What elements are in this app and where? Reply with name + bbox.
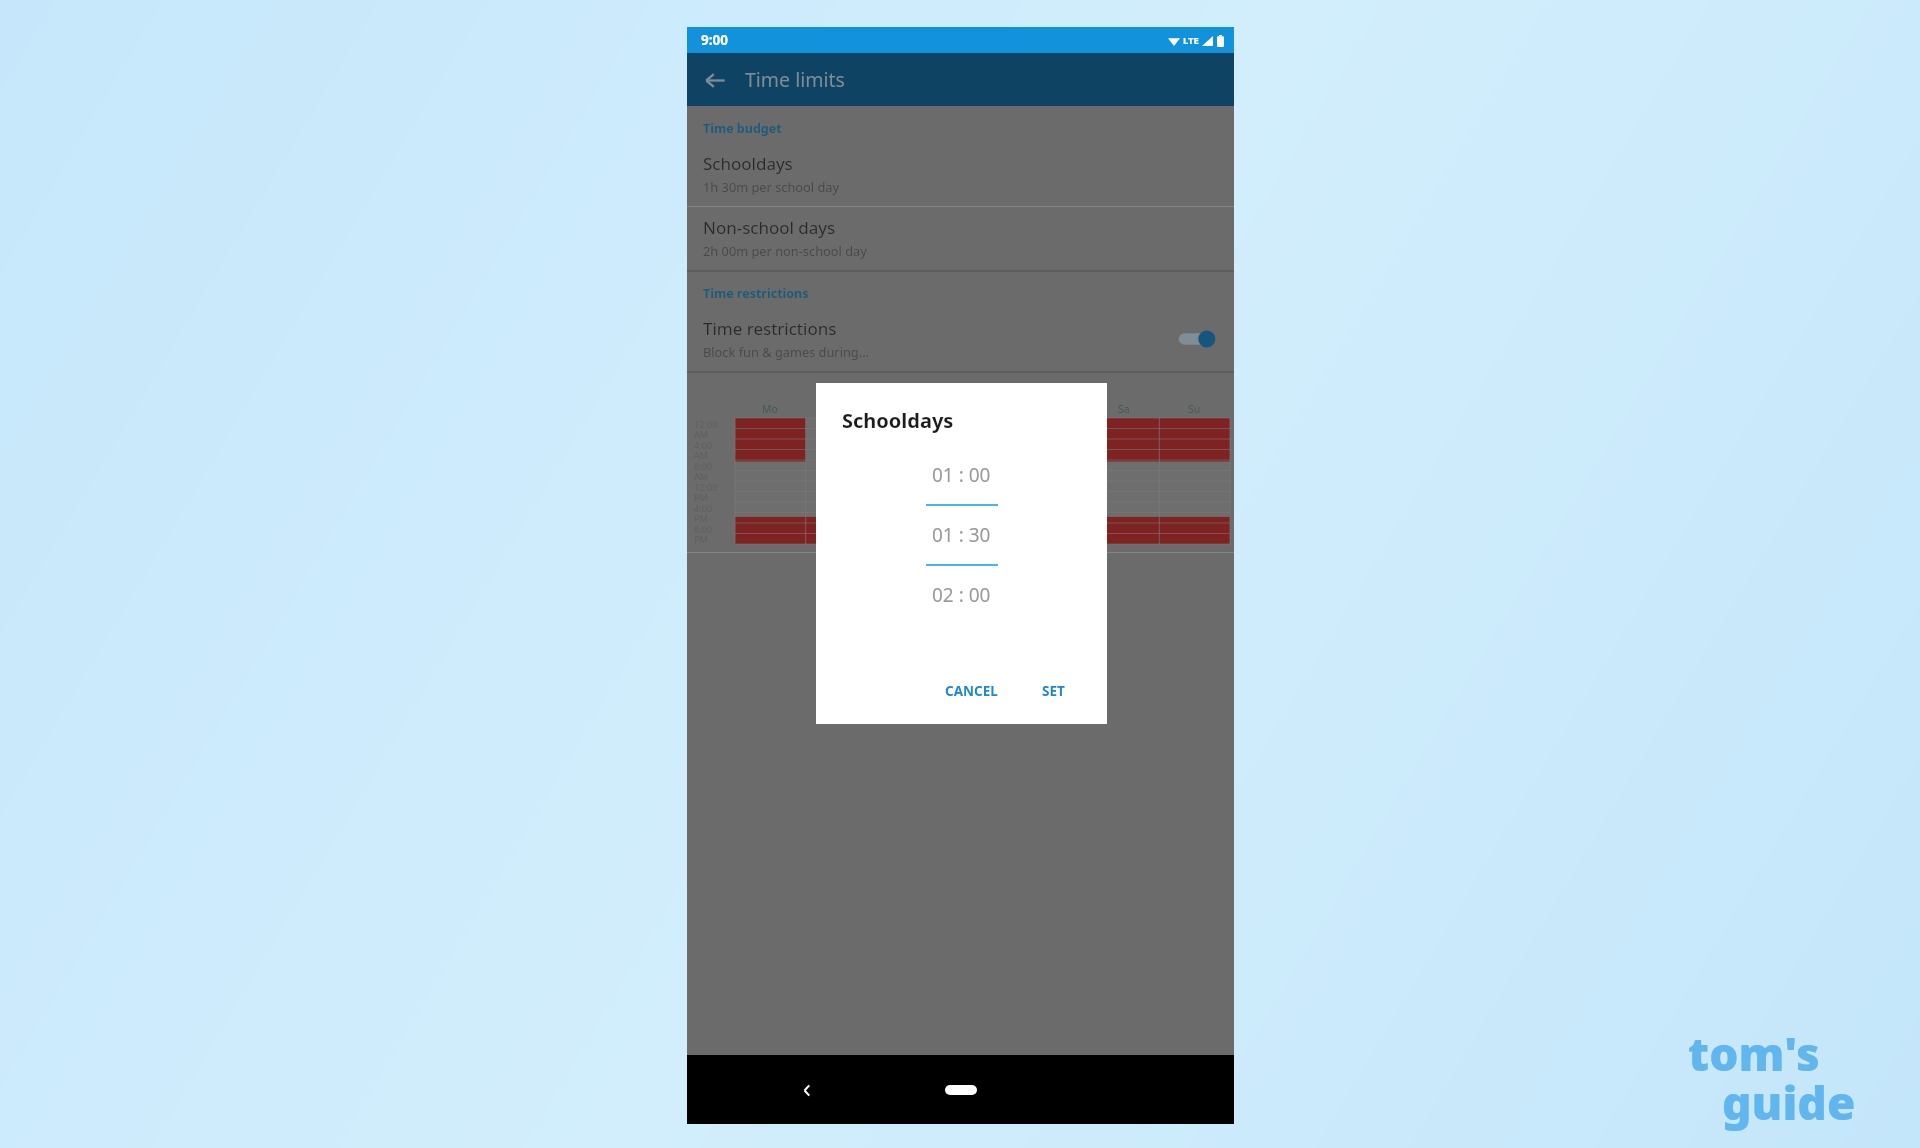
button[interactable]: 01 : 00 [816, 462, 1107, 488]
staticText: Schooldays [842, 407, 954, 434]
button[interactable]: Time restrictions toggle [1176, 326, 1220, 352]
staticText: 01 : 00 [932, 462, 991, 488]
staticText: Time limits [745, 66, 845, 93]
button[interactable]: Back [787, 1070, 827, 1110]
button[interactable]: Back [693, 58, 737, 102]
button[interactable]: Schooldays [687, 143, 1234, 206]
staticText: Block fun & games during... [703, 343, 870, 360]
staticText: 02 : 00 [932, 582, 991, 608]
button[interactable]: SET [1032, 676, 1075, 706]
button[interactable]: Home [943, 1084, 978, 1096]
staticText: SET [1042, 682, 1065, 700]
button[interactable]: Non-school days [687, 207, 1234, 270]
staticText: Time restrictions [703, 317, 837, 340]
staticText: guide [1722, 1071, 1856, 1134]
staticText: 2h 00m per non-school day [703, 242, 867, 259]
button[interactable]: 01 : 30 [816, 522, 1107, 548]
staticText: Tu [834, 402, 846, 416]
staticText: 8:00 AM [694, 460, 713, 481]
staticText: 12:00 AM [694, 418, 718, 439]
button[interactable]: Time restrictions [687, 308, 1234, 371]
button[interactable]: 02 : 00 [816, 582, 1107, 608]
staticText: Time restrictions [703, 285, 809, 302]
staticText: Su [1188, 402, 1201, 416]
staticText: LTE [1183, 34, 1199, 47]
staticText: Non-school days [703, 216, 836, 239]
staticText: 1h 30m per school day [703, 178, 840, 195]
button[interactable]: CANCEL [935, 676, 1008, 706]
staticText: 4:00 AM [694, 439, 713, 460]
staticText: We [903, 402, 919, 416]
staticText: 4:00 PM [694, 502, 713, 523]
staticText: Sa [1118, 402, 1130, 416]
staticText: tom's [1688, 1022, 1820, 1085]
staticText: CANCEL [945, 682, 998, 700]
staticText: Mo [762, 402, 778, 416]
staticText: 12:00 PM [694, 481, 718, 502]
staticText: 9:00 [701, 31, 728, 49]
staticText: Schooldays [703, 152, 793, 175]
staticText: 8:00 PM [694, 523, 713, 544]
staticText: 01 : 30 [932, 522, 991, 548]
staticText: Time budget [703, 120, 782, 137]
